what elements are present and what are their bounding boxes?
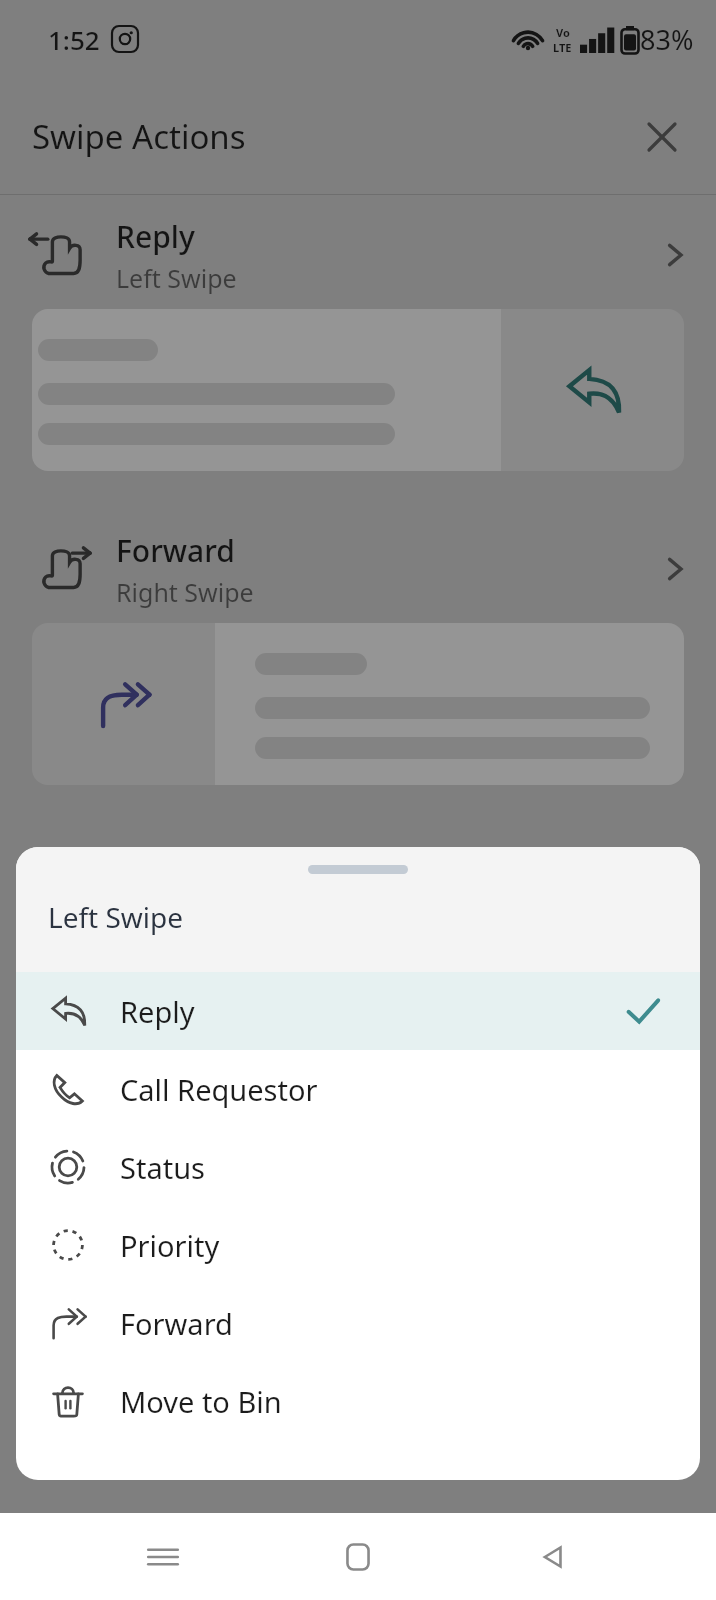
button[interactable]: Back xyxy=(521,1525,585,1589)
button[interactable]: Reply xyxy=(0,201,716,309)
button[interactable]: Priority xyxy=(16,1206,700,1284)
staticText: Status xyxy=(120,1148,662,1187)
button[interactable]: Forward xyxy=(0,515,716,623)
button[interactable]: Close xyxy=(634,109,690,165)
button[interactable]: Move to Bin xyxy=(16,1362,700,1440)
button[interactable] xyxy=(32,623,684,785)
staticText: Call Requestor xyxy=(120,1070,662,1109)
staticText: 1:52 xyxy=(48,22,100,57)
staticText: Priority xyxy=(120,1226,662,1265)
staticText: Left Swipe xyxy=(48,898,184,936)
staticText: Left Swipe xyxy=(116,261,237,295)
staticText: Vo xyxy=(556,25,570,40)
button[interactable] xyxy=(32,309,684,471)
staticText: 83% xyxy=(640,21,694,58)
staticText: Right Swipe xyxy=(116,575,254,609)
staticText: Forward xyxy=(120,1304,662,1343)
staticText: Swipe Actions xyxy=(32,114,246,159)
button[interactable]: Forward xyxy=(16,1284,700,1362)
staticText: Reply xyxy=(120,992,624,1031)
button[interactable]: Status xyxy=(16,1128,700,1206)
button[interactable]: Recents xyxy=(131,1525,195,1589)
staticText: Forward xyxy=(116,530,235,571)
staticText: Move to Bin xyxy=(120,1382,662,1421)
staticText: Reply xyxy=(116,216,195,257)
button[interactable]: Call Requestor xyxy=(16,1050,700,1128)
button[interactable]: Home xyxy=(326,1525,390,1589)
staticText: LTE xyxy=(553,40,572,55)
button[interactable]: Reply xyxy=(16,972,700,1050)
